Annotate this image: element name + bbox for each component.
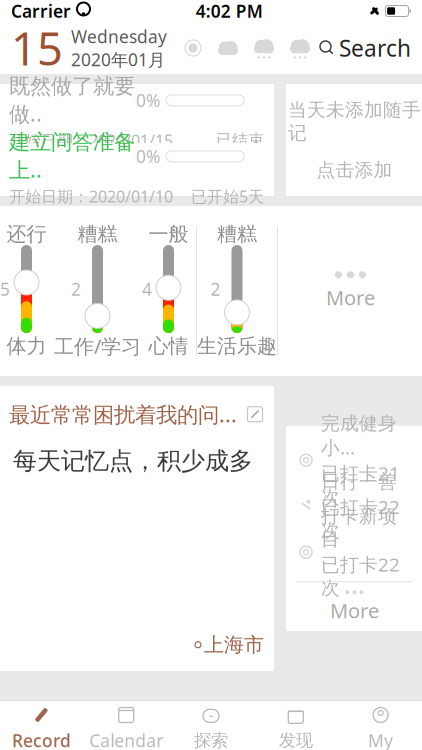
staticText: 2 (210, 277, 220, 300)
button[interactable]: 建立问答准备上.. (0, 143, 274, 193)
staticText: 0% (136, 145, 160, 168)
staticText: More (330, 597, 379, 624)
button[interactable]: More (278, 206, 422, 376)
staticText: 探索 (194, 730, 228, 750)
staticText: 点击添加 (316, 158, 392, 181)
button[interactable]: 日行一善 (286, 483, 422, 529)
staticText: 心情 (148, 334, 188, 358)
staticText: 工作/学习 (54, 333, 141, 359)
staticText: 15 (11, 18, 63, 78)
button[interactable]: 还行 (0, 223, 54, 359)
staticText: 已打卡21次 (321, 461, 400, 508)
staticText: 一般 (148, 222, 188, 246)
staticText: 已结束 (216, 130, 264, 150)
staticText: 生活乐趣 (197, 334, 277, 358)
staticText: 还行 (6, 222, 46, 246)
staticText: 体力 (6, 334, 46, 358)
staticText: 上海市 (204, 632, 264, 657)
staticText: 每天记忆点，积少成多 (13, 446, 253, 476)
button[interactable]: Calendar (84, 701, 169, 750)
staticText: 打卡新项目 (321, 505, 397, 551)
staticText: 2 (71, 277, 81, 300)
button[interactable]: More (286, 582, 422, 624)
staticText: 建立问答准备上.. (9, 129, 135, 184)
staticText: 2020年01月 (71, 48, 165, 71)
staticText: My (368, 729, 393, 750)
staticText: 最近常常困扰着我的问... (9, 400, 237, 428)
staticText: Search (339, 33, 411, 63)
staticText: 开始日期：2020/01/15 (9, 130, 173, 151)
staticText: More (326, 284, 375, 311)
staticText: 已开始5天 (191, 186, 264, 207)
button[interactable]: Record (0, 701, 84, 750)
staticText: Record (12, 729, 71, 750)
staticText: 完成健身小... (321, 412, 397, 460)
staticText: 糟糕 (217, 222, 257, 246)
staticText: 4 (142, 277, 152, 300)
staticText: 开始日期：2020/01/10 (9, 186, 173, 207)
button[interactable]: 发现 (253, 701, 338, 750)
button[interactable]: Search (319, 33, 411, 63)
button[interactable]: 糟糕 (54, 223, 141, 359)
button[interactable]: 既然做了就要做.. (0, 87, 274, 137)
staticText: 4:02 PM (196, 0, 263, 22)
staticText: 日行一善 (321, 470, 397, 493)
staticText: 已打卡22次 (321, 552, 400, 599)
button[interactable]: 完成健身小... (286, 437, 422, 483)
staticText: 糟糕 (77, 222, 117, 246)
staticText: Carrier (11, 0, 71, 22)
staticText: 已打卡22次 (321, 494, 400, 542)
button[interactable]: 一般 (141, 223, 196, 359)
staticText: 5 (0, 277, 10, 300)
button[interactable]: 探索 (169, 701, 253, 750)
staticText: 0% (136, 89, 160, 112)
button[interactable]: 最近常常困扰着我的问... (0, 386, 274, 671)
staticText: 当天未添加随手记 (288, 99, 421, 144)
staticText: Wednesday (71, 25, 167, 48)
staticText: 既然做了就要做.. (9, 73, 135, 128)
button[interactable]: 糟糕 (197, 223, 277, 359)
staticText: Calendar (89, 729, 163, 750)
staticText: 发现 (279, 730, 313, 750)
button[interactable]: My (338, 701, 422, 750)
button[interactable]: 当天未添加随手记 (286, 84, 422, 196)
button[interactable]: 打卡新项目 (286, 529, 422, 575)
